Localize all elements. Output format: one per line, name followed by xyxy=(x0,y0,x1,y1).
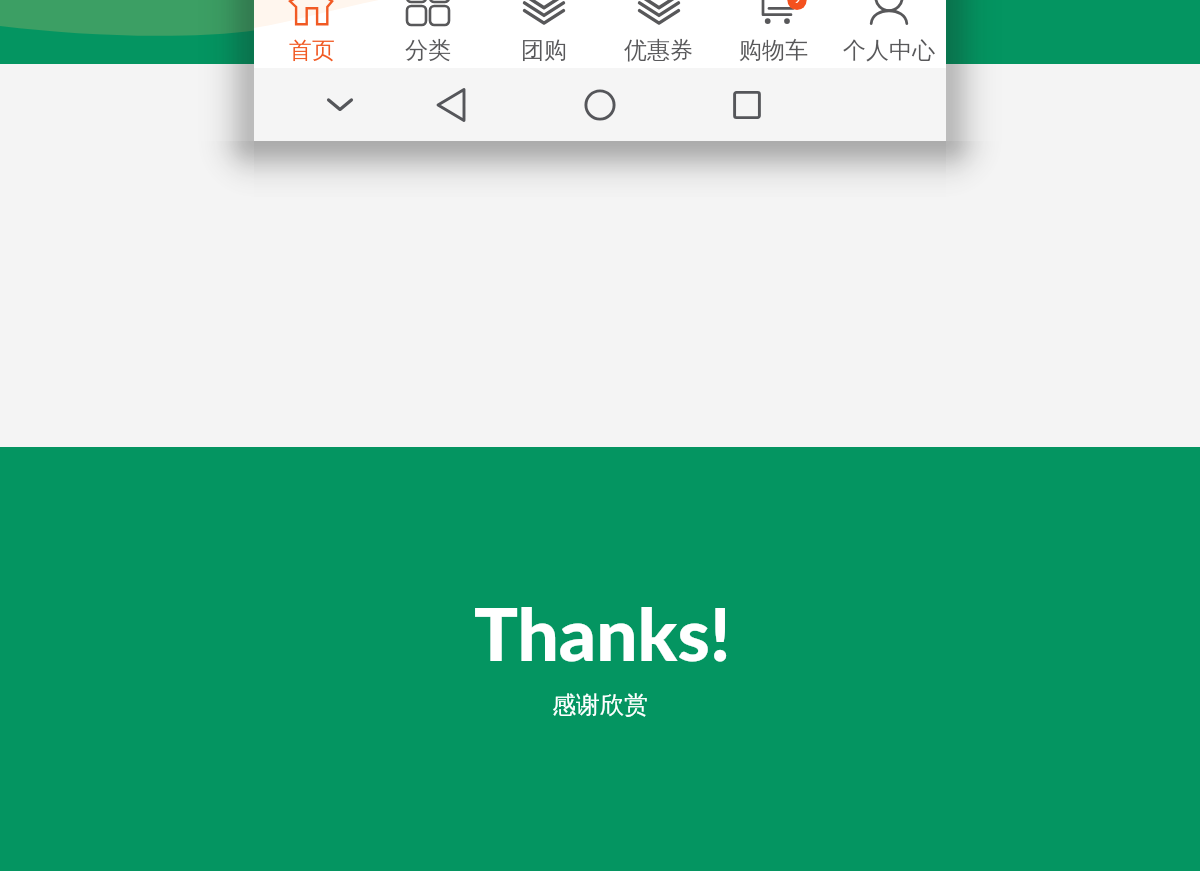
staticText: 个人中心 xyxy=(843,36,935,65)
button[interactable]: Back xyxy=(418,72,484,138)
staticText: 优惠券 xyxy=(624,36,693,65)
button[interactable]: 2 xyxy=(716,0,831,68)
button[interactable]: Recent apps xyxy=(714,72,780,138)
staticText: Thanks! xyxy=(474,589,731,677)
staticText: 团购 xyxy=(521,36,567,65)
staticText: 首页 xyxy=(289,36,335,65)
button[interactable]: 首页 xyxy=(254,0,370,68)
staticText: 购物车 xyxy=(739,36,808,65)
button[interactable]: Home xyxy=(567,72,633,138)
staticText: 2 xyxy=(794,0,801,3)
staticText: 感谢欣赏 xyxy=(552,690,648,720)
button[interactable]: 团购 xyxy=(486,0,601,68)
button[interactable]: 个人中心 xyxy=(831,0,946,68)
button[interactable]: Hide keyboard xyxy=(307,72,373,138)
button[interactable]: 优惠券 xyxy=(601,0,716,68)
button[interactable]: 分类 xyxy=(370,0,486,68)
staticText: 分类 xyxy=(405,36,451,65)
